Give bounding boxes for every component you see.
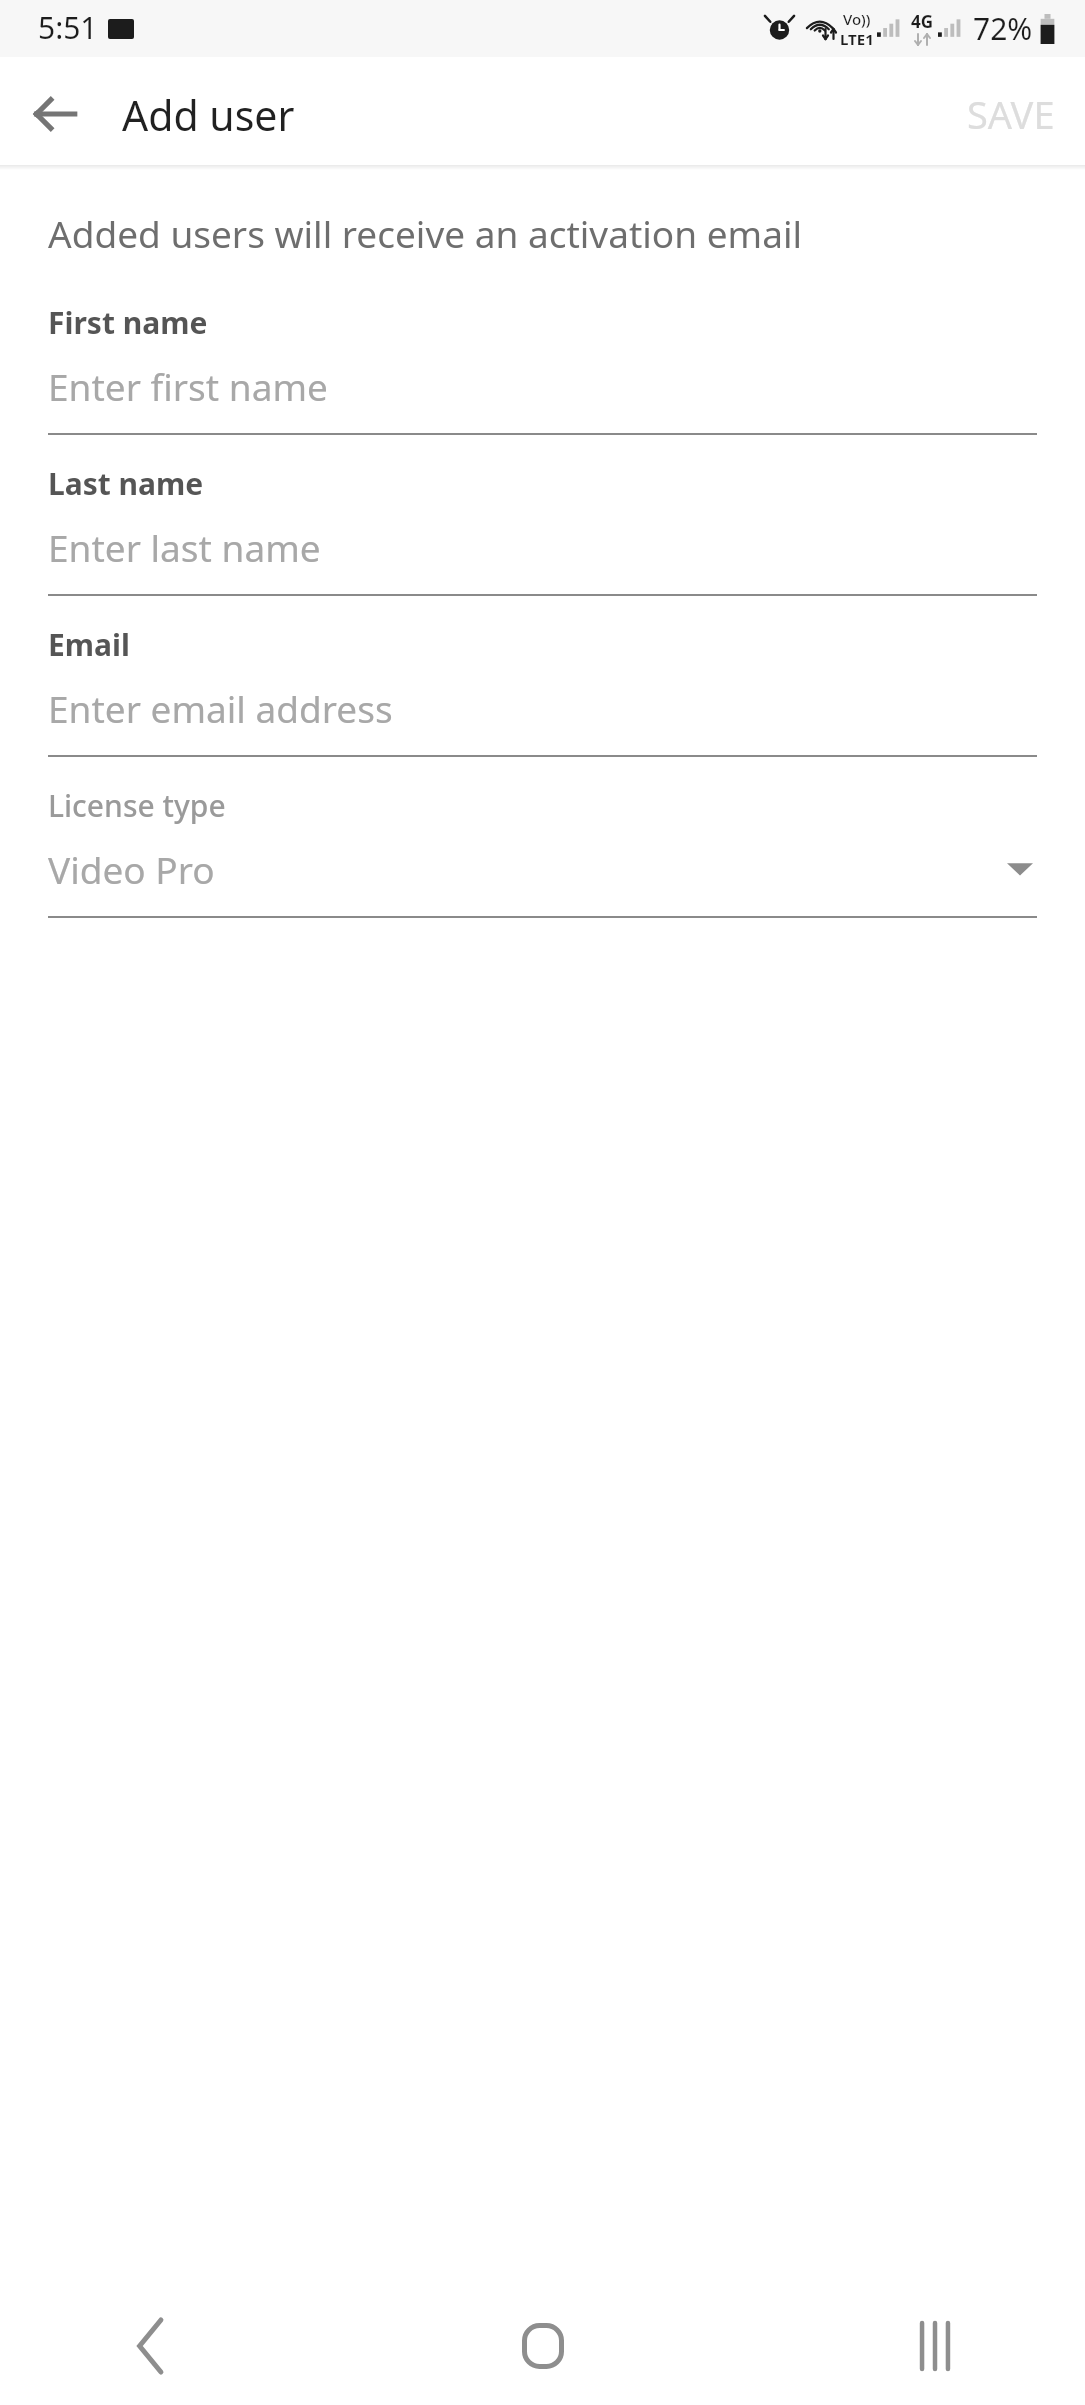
button[interactable]: Back [90,2287,210,2405]
button[interactable]: SAVE [937,57,1085,170]
staticText: Last name [48,463,204,504]
button[interactable]: License type [48,785,1037,946]
other: Open license type menu [1007,860,1033,878]
staticText: Video Pro [48,844,215,894]
button[interactable]: Back [16,75,94,153]
staticText: 72% [973,8,1033,49]
staticText: SAVE [967,88,1055,140]
staticText: Enter first name [48,361,328,411]
staticText: 5:51 [38,7,98,48]
staticText: Enter email address [48,683,393,733]
staticText: License type [48,785,226,826]
staticText: First name [48,302,208,343]
staticText: 4G [911,10,934,33]
button[interactable]: Home [483,2287,603,2405]
button[interactable]: First name [48,302,1037,463]
staticText: Enter last name [48,522,321,572]
staticText: Vo)) [843,9,871,29]
staticText: Email [48,624,130,665]
staticText: LTE1 [840,29,874,49]
staticText: Add user [122,87,295,143]
button[interactable]: Recent apps [875,2287,995,2405]
staticText: Added users will receive an activation e… [48,208,802,258]
button[interactable]: Last name [48,463,1037,624]
button[interactable]: Email [48,624,1037,785]
